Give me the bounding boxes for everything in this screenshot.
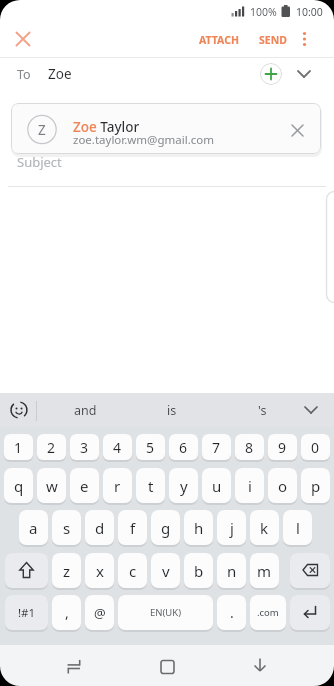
staticText: w [46,476,58,496]
button[interactable]: @ [85,595,114,630]
staticText: . [230,603,234,622]
button[interactable]: s [52,510,81,545]
button[interactable] [292,24,320,54]
button[interactable] [231,393,299,427]
button[interactable]: c [118,553,147,588]
button[interactable]: u [202,468,231,503]
button[interactable]: 5 [136,434,165,460]
button[interactable]: 7 [202,434,231,460]
staticText: , [65,603,69,622]
button[interactable]: r [103,468,132,503]
button[interactable]: p [301,468,330,503]
staticText: Zoe [48,65,72,83]
button[interactable] [37,393,134,427]
button[interactable]: EN(UK) [118,595,213,630]
staticText: !#1 [18,605,36,621]
staticText: v [162,561,170,581]
button[interactable]: m [250,553,279,588]
staticText: 7 [212,438,221,457]
staticText: o [278,476,288,496]
staticText: x [96,561,104,581]
staticText: 8 [245,438,254,457]
button[interactable]: !#1 [5,595,48,630]
button[interactable]: a [19,510,48,545]
staticText: Subject [17,153,62,171]
staticText: 5 [146,438,155,457]
button[interactable] [0,393,37,427]
staticText: ATTACH [199,33,239,47]
button[interactable]: 0 [301,434,330,460]
staticText: s [63,518,71,538]
staticText: g [161,518,171,538]
staticText: 0 [311,438,320,457]
button[interactable]: k [250,510,279,545]
staticText: Z [38,121,46,139]
button[interactable]: b [184,553,213,588]
staticText: EN(UK) [150,606,182,619]
button[interactable] [260,63,282,85]
button[interactable]: f [118,510,147,545]
staticText: h [194,518,204,538]
button[interactable] [5,553,48,588]
button[interactable]: e [70,468,99,503]
button[interactable]: q [4,468,33,503]
button[interactable]: t [136,468,165,503]
button[interactable] [283,116,313,146]
staticText: a [29,518,38,538]
button[interactable]: w [37,468,66,503]
button[interactable]: v [151,553,180,588]
staticText: d [95,518,105,538]
staticText: i [248,476,252,496]
button[interactable]: 3 [70,434,99,460]
button[interactable]: . [217,595,246,630]
button[interactable]: n [217,553,246,588]
button[interactable]: 6 [169,434,198,460]
staticText: b [194,561,204,581]
staticText: m [257,561,272,581]
button[interactable]: 1 [4,434,33,460]
button[interactable] [134,393,231,427]
staticText: 10:00 [296,5,323,19]
button[interactable] [190,24,248,54]
staticText: To [17,66,31,83]
staticText: Zoe Taylor [73,118,140,136]
button[interactable] [290,595,330,630]
button[interactable]: 4 [103,434,132,460]
button[interactable] [250,24,296,54]
button[interactable]: g [151,510,180,545]
button[interactable] [290,553,330,588]
button[interactable] [299,393,334,427]
button[interactable]: 2 [37,434,66,460]
button[interactable]: h [184,510,213,545]
staticText: 6 [179,438,188,457]
button[interactable]: z [52,553,81,588]
button[interactable]: o [268,468,297,503]
button[interactable] [240,645,280,686]
staticText: n [227,561,237,581]
button[interactable]: 8 [235,434,264,460]
button[interactable]: l [283,510,312,545]
button[interactable]: j [217,510,246,545]
staticText: j [230,518,234,538]
staticText: t [148,476,154,496]
button[interactable]: d [85,510,114,545]
staticText: 3 [80,438,89,457]
staticText: k [260,518,269,538]
button[interactable] [290,60,320,88]
button[interactable] [54,645,94,686]
button[interactable]: x [85,553,114,588]
button[interactable]: , [52,595,81,630]
staticText: q [14,476,24,496]
staticText: e [80,476,89,496]
button[interactable]: 9 [268,434,297,460]
button[interactable] [8,24,40,54]
staticText: .com [257,606,279,619]
staticText: l [296,518,300,538]
button[interactable]: i [235,468,264,503]
button[interactable]: .com [250,595,286,630]
button[interactable] [147,645,187,686]
staticText: y [180,476,188,496]
button[interactable]: y [169,468,198,503]
button[interactable] [11,103,321,154]
staticText: f [130,518,136,538]
